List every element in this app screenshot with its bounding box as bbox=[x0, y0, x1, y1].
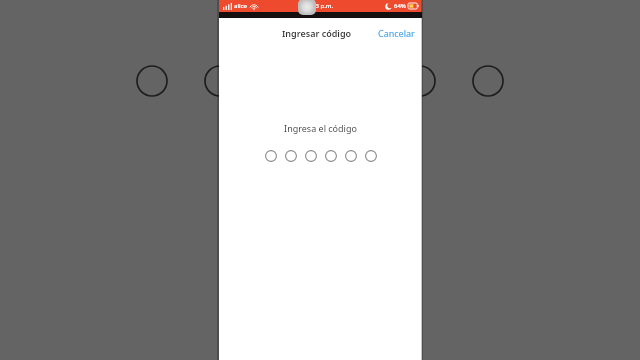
staticText: alice bbox=[234, 2, 248, 10]
button[interactable]: Dígito 2 del código bbox=[281, 146, 301, 166]
staticText: 64% bbox=[394, 2, 406, 10]
staticText: 5:33 p.m. bbox=[307, 2, 334, 10]
staticText: Ingresar código bbox=[282, 27, 352, 39]
button[interactable]: Dígito 4 del código bbox=[321, 146, 341, 166]
staticText: Ingresa el código bbox=[219, 122, 422, 134]
button[interactable]: Dígito 6 del código bbox=[361, 146, 381, 166]
button[interactable]: Dígito 5 del código bbox=[341, 146, 361, 166]
button[interactable]: Dígito 3 del código bbox=[301, 146, 321, 166]
button[interactable]: Dígito 1 del código bbox=[261, 146, 281, 166]
button[interactable]: Cancelar bbox=[371, 24, 422, 42]
staticText: Cancelar bbox=[378, 27, 415, 39]
